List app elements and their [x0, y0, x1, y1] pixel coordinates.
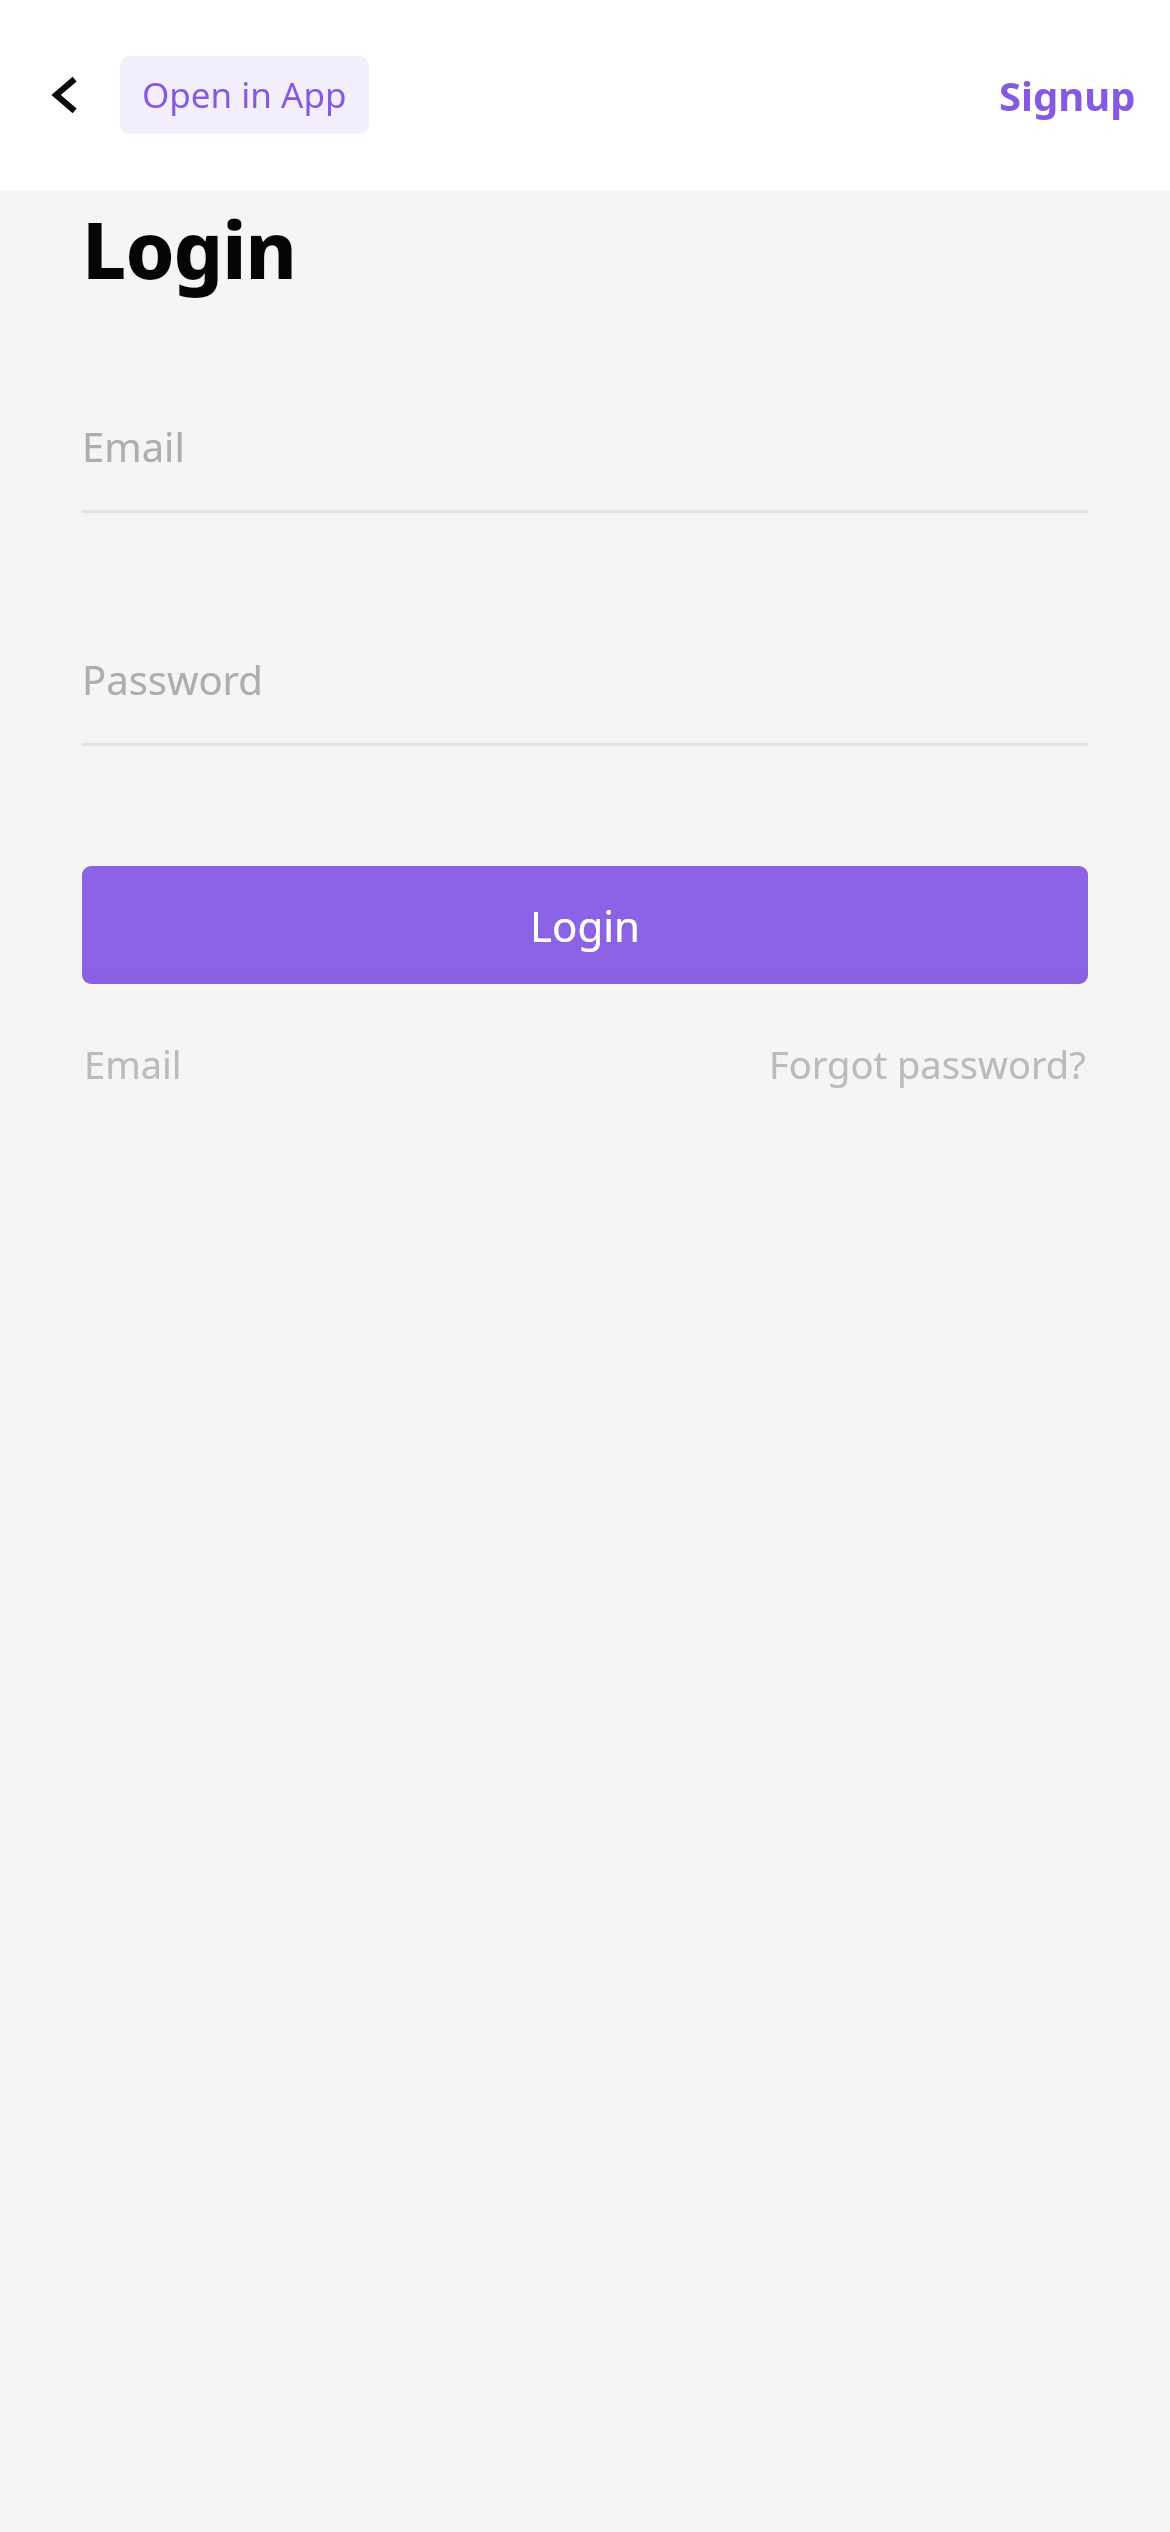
button[interactable]: Email	[82, 410, 1088, 513]
button[interactable]: Forgot password?	[767, 1028, 1088, 1100]
button[interactable]: Password	[82, 643, 1088, 746]
staticText: Email	[82, 419, 185, 473]
staticText: Open in App	[142, 71, 347, 119]
staticText: Password	[82, 652, 263, 706]
button[interactable]: Email	[82, 1028, 184, 1100]
staticText: Forgot password?	[769, 1038, 1086, 1090]
staticText: Signup	[999, 68, 1136, 122]
staticText: Login	[530, 897, 641, 954]
button[interactable]: Open in App	[120, 56, 369, 134]
button[interactable]: Signup	[985, 56, 1150, 134]
button[interactable]: Back	[22, 53, 106, 137]
staticText: Email	[84, 1038, 182, 1090]
button[interactable]: Login	[82, 866, 1088, 984]
staticText: Login	[82, 196, 296, 302]
